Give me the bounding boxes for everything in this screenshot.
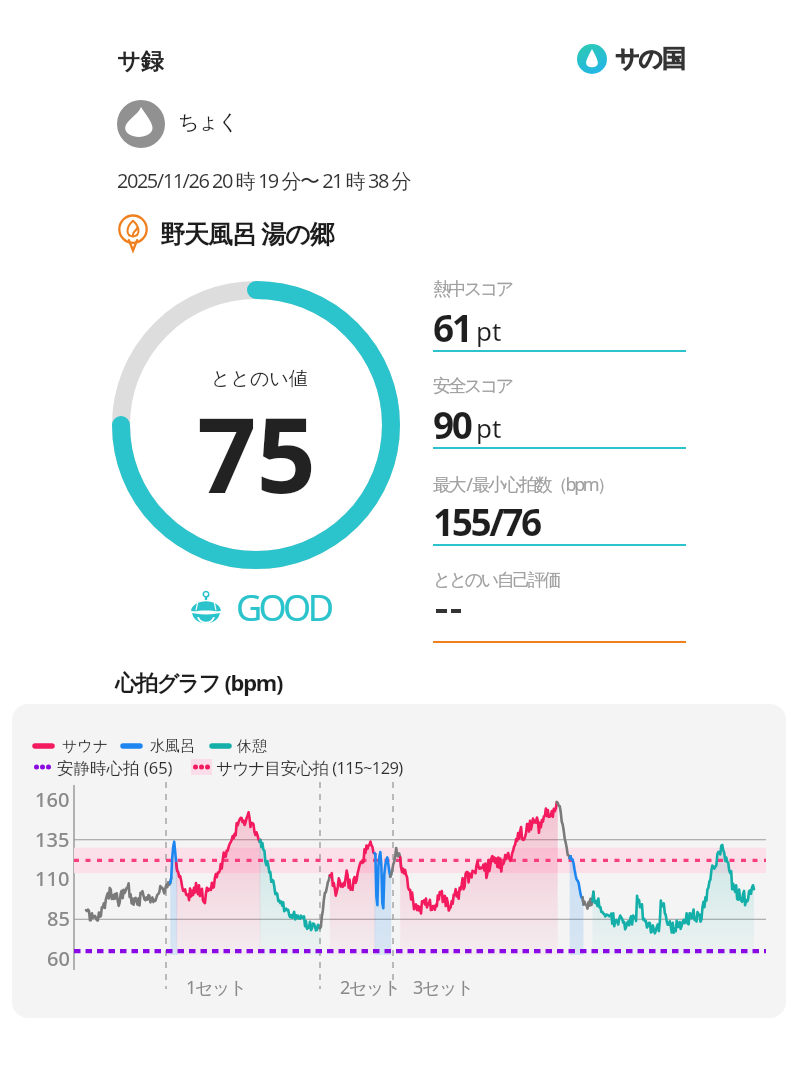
staticText: 160 [35, 786, 70, 813]
staticText: 安静時心拍 (65) [57, 756, 173, 779]
button[interactable]: 野天風呂 湯の郷 [114, 214, 334, 252]
button[interactable]: GOOD [188, 583, 331, 632]
staticText: 野天風呂 湯の郷 [160, 216, 334, 250]
staticText: サの国 [615, 44, 685, 74]
staticText: サウナ [62, 737, 109, 756]
staticText: 休憩 [237, 737, 267, 756]
staticText: ととのい値 [211, 367, 308, 391]
staticText: ちょく [178, 109, 238, 135]
button[interactable]: サの国 [577, 44, 685, 74]
button[interactable]: 熱中スコア [433, 277, 686, 374]
staticText: 3セット [413, 975, 473, 1000]
staticText: 60 [47, 945, 70, 972]
button[interactable]: 安全スコア [433, 374, 686, 471]
staticText: pt [476, 313, 502, 348]
staticText: 85 [47, 905, 70, 932]
staticText: GOOD [236, 583, 331, 632]
staticText: 2025/11/26 20 時 19 分〜 21 時 38 分 [117, 167, 411, 194]
staticText: 75 [197, 382, 316, 524]
button[interactable]: サウナ [12, 704, 786, 1018]
staticText: 1セット [186, 975, 246, 1000]
button[interactable]: ととのい値 75 GOOD [112, 281, 400, 569]
staticText: 155/76 [433, 496, 540, 546]
button[interactable]: ちょく [117, 100, 238, 148]
staticText: ととのい自己評価 [433, 569, 559, 592]
button[interactable]: サ録 [117, 47, 164, 76]
staticText: サ録 [117, 47, 164, 76]
staticText: 水風呂 [150, 737, 195, 756]
button[interactable]: ととのい自己評価 [433, 568, 686, 665]
staticText: 心拍グラフ (bpm) [115, 667, 283, 697]
staticText: 2セット [340, 975, 400, 1000]
staticText: 110 [35, 865, 70, 892]
staticText: 熱中スコア [433, 278, 512, 301]
staticText: 安全スコア [433, 375, 512, 398]
staticText: 135 [35, 826, 70, 853]
staticText: 61 [433, 302, 471, 352]
staticText: pt [476, 410, 502, 445]
button[interactable]: 最大 / 最小心拍数（bpm） [433, 471, 686, 568]
staticText: サウナ目安心拍 (115~129) [216, 756, 403, 779]
staticText: 最大 / 最小心拍数（bpm） [433, 472, 613, 497]
staticText: 90 [433, 399, 471, 449]
